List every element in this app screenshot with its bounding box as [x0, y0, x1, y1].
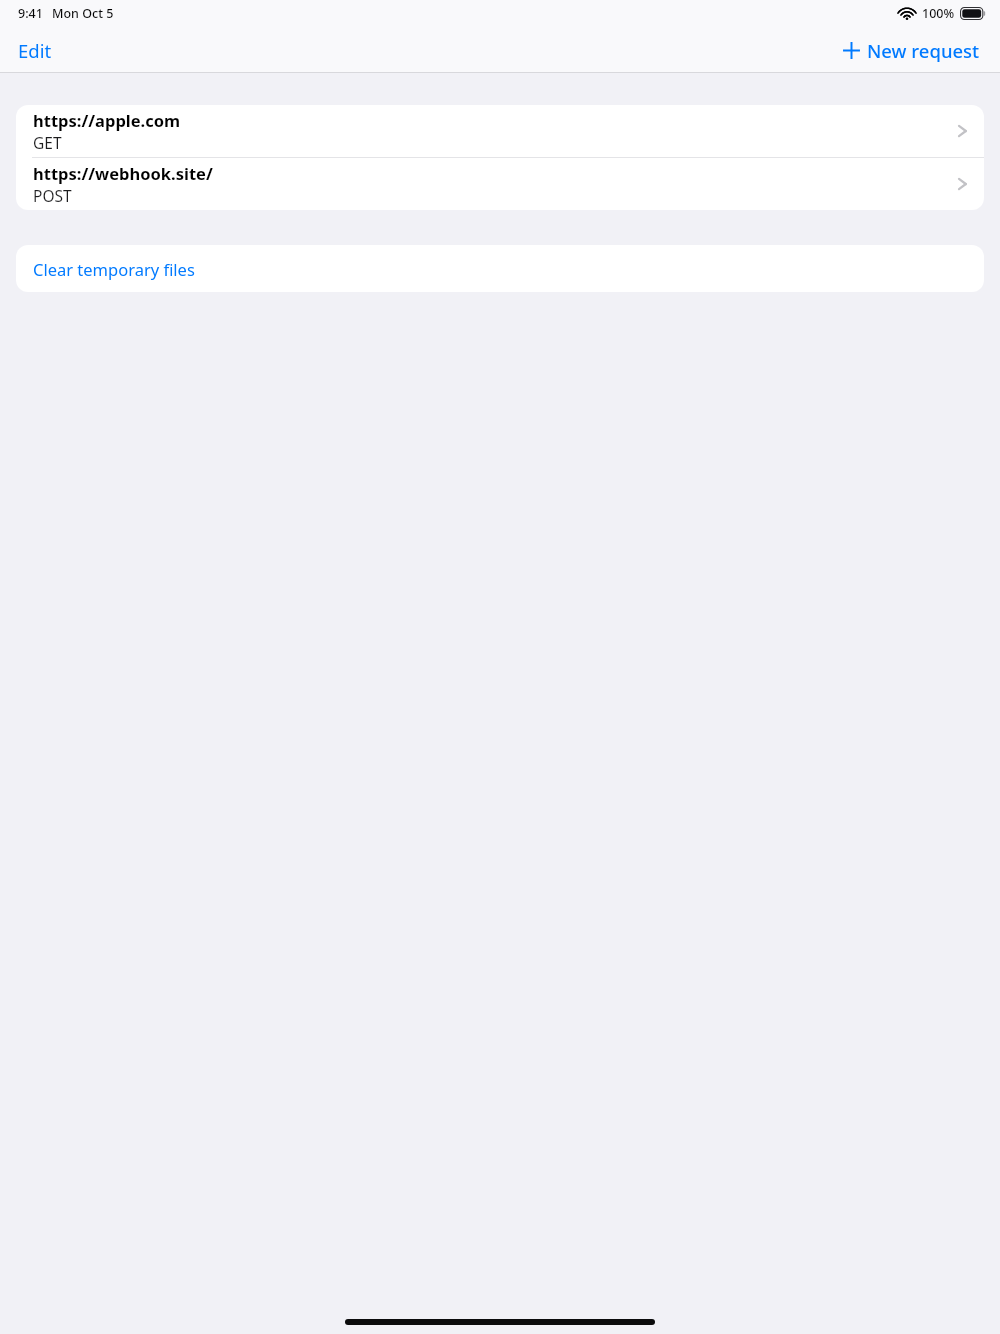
- other: Open request details: [957, 175, 968, 193]
- staticText: Clear temporary files: [33, 258, 195, 280]
- staticText: GET: [33, 132, 62, 153]
- staticText: POST: [33, 185, 72, 206]
- button[interactable]: New request: [834, 33, 989, 68]
- button[interactable]: https://apple.com: [16, 105, 984, 157]
- other: Open request details: [957, 122, 968, 140]
- button[interactable]: Clear temporary files: [16, 245, 984, 292]
- button[interactable]: Edit: [8, 33, 62, 68]
- staticText: 100%: [922, 5, 955, 22]
- staticText: https://webhook.site/: [33, 162, 213, 184]
- staticText: Edit: [18, 38, 52, 63]
- staticText: Mon Oct 5: [52, 5, 114, 22]
- staticText: 9:41: [18, 5, 43, 22]
- staticText: https://apple.com: [33, 109, 181, 131]
- staticText: New request: [867, 38, 980, 63]
- button[interactable]: https://webhook.site/: [16, 158, 984, 210]
